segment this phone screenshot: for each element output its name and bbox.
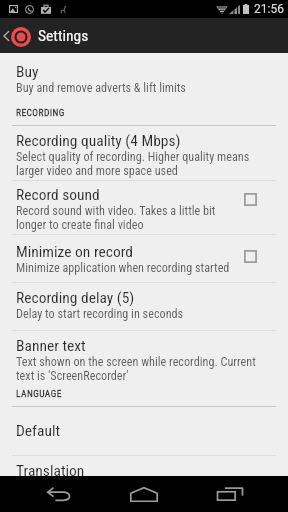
staticText: Recording quality (4 Mbps) [16, 132, 181, 150]
button[interactable]: Banner text [0, 331, 288, 383]
staticText: Minimize application when recording star… [16, 261, 230, 275]
button[interactable]: Recent apps [205, 476, 255, 512]
staticText: Select quality of recording. Higher qual… [16, 150, 264, 178]
button[interactable]: Navigate up [0, 18, 288, 53]
staticText: Text shown on the screen while recording… [16, 355, 264, 383]
staticText: Recording delay (5) [16, 289, 135, 307]
button[interactable]: Minimize on record [0, 235, 288, 283]
staticText: LANGUAGE [16, 388, 62, 399]
staticText: Buy and remove adverts & lift limits [16, 81, 186, 95]
button[interactable]: Record sound [0, 181, 288, 235]
staticText: 21:56 [254, 2, 284, 16]
button[interactable]: Buy [0, 53, 288, 101]
staticText: Record sound with video. Takes a little … [16, 204, 236, 232]
button[interactable]: Default [0, 407, 288, 456]
button[interactable]: Home [119, 476, 169, 512]
button[interactable]: Recording quality (4 Mbps) [0, 126, 288, 181]
staticText: Settings [38, 27, 89, 45]
staticText: RECORDING [16, 107, 65, 118]
staticText: Default [16, 422, 61, 440]
staticText: Translation [16, 462, 85, 476]
staticText: Banner text [16, 337, 86, 355]
staticText: Minimize on record [16, 243, 133, 261]
staticText: Record sound [16, 186, 100, 204]
button[interactable]: Recording delay (5) [0, 283, 288, 331]
staticText: Delay to start recording in seconds [16, 307, 184, 321]
button[interactable]: Translation [0, 456, 288, 476]
staticText: Buy [16, 63, 39, 81]
button[interactable]: Back [34, 476, 84, 512]
